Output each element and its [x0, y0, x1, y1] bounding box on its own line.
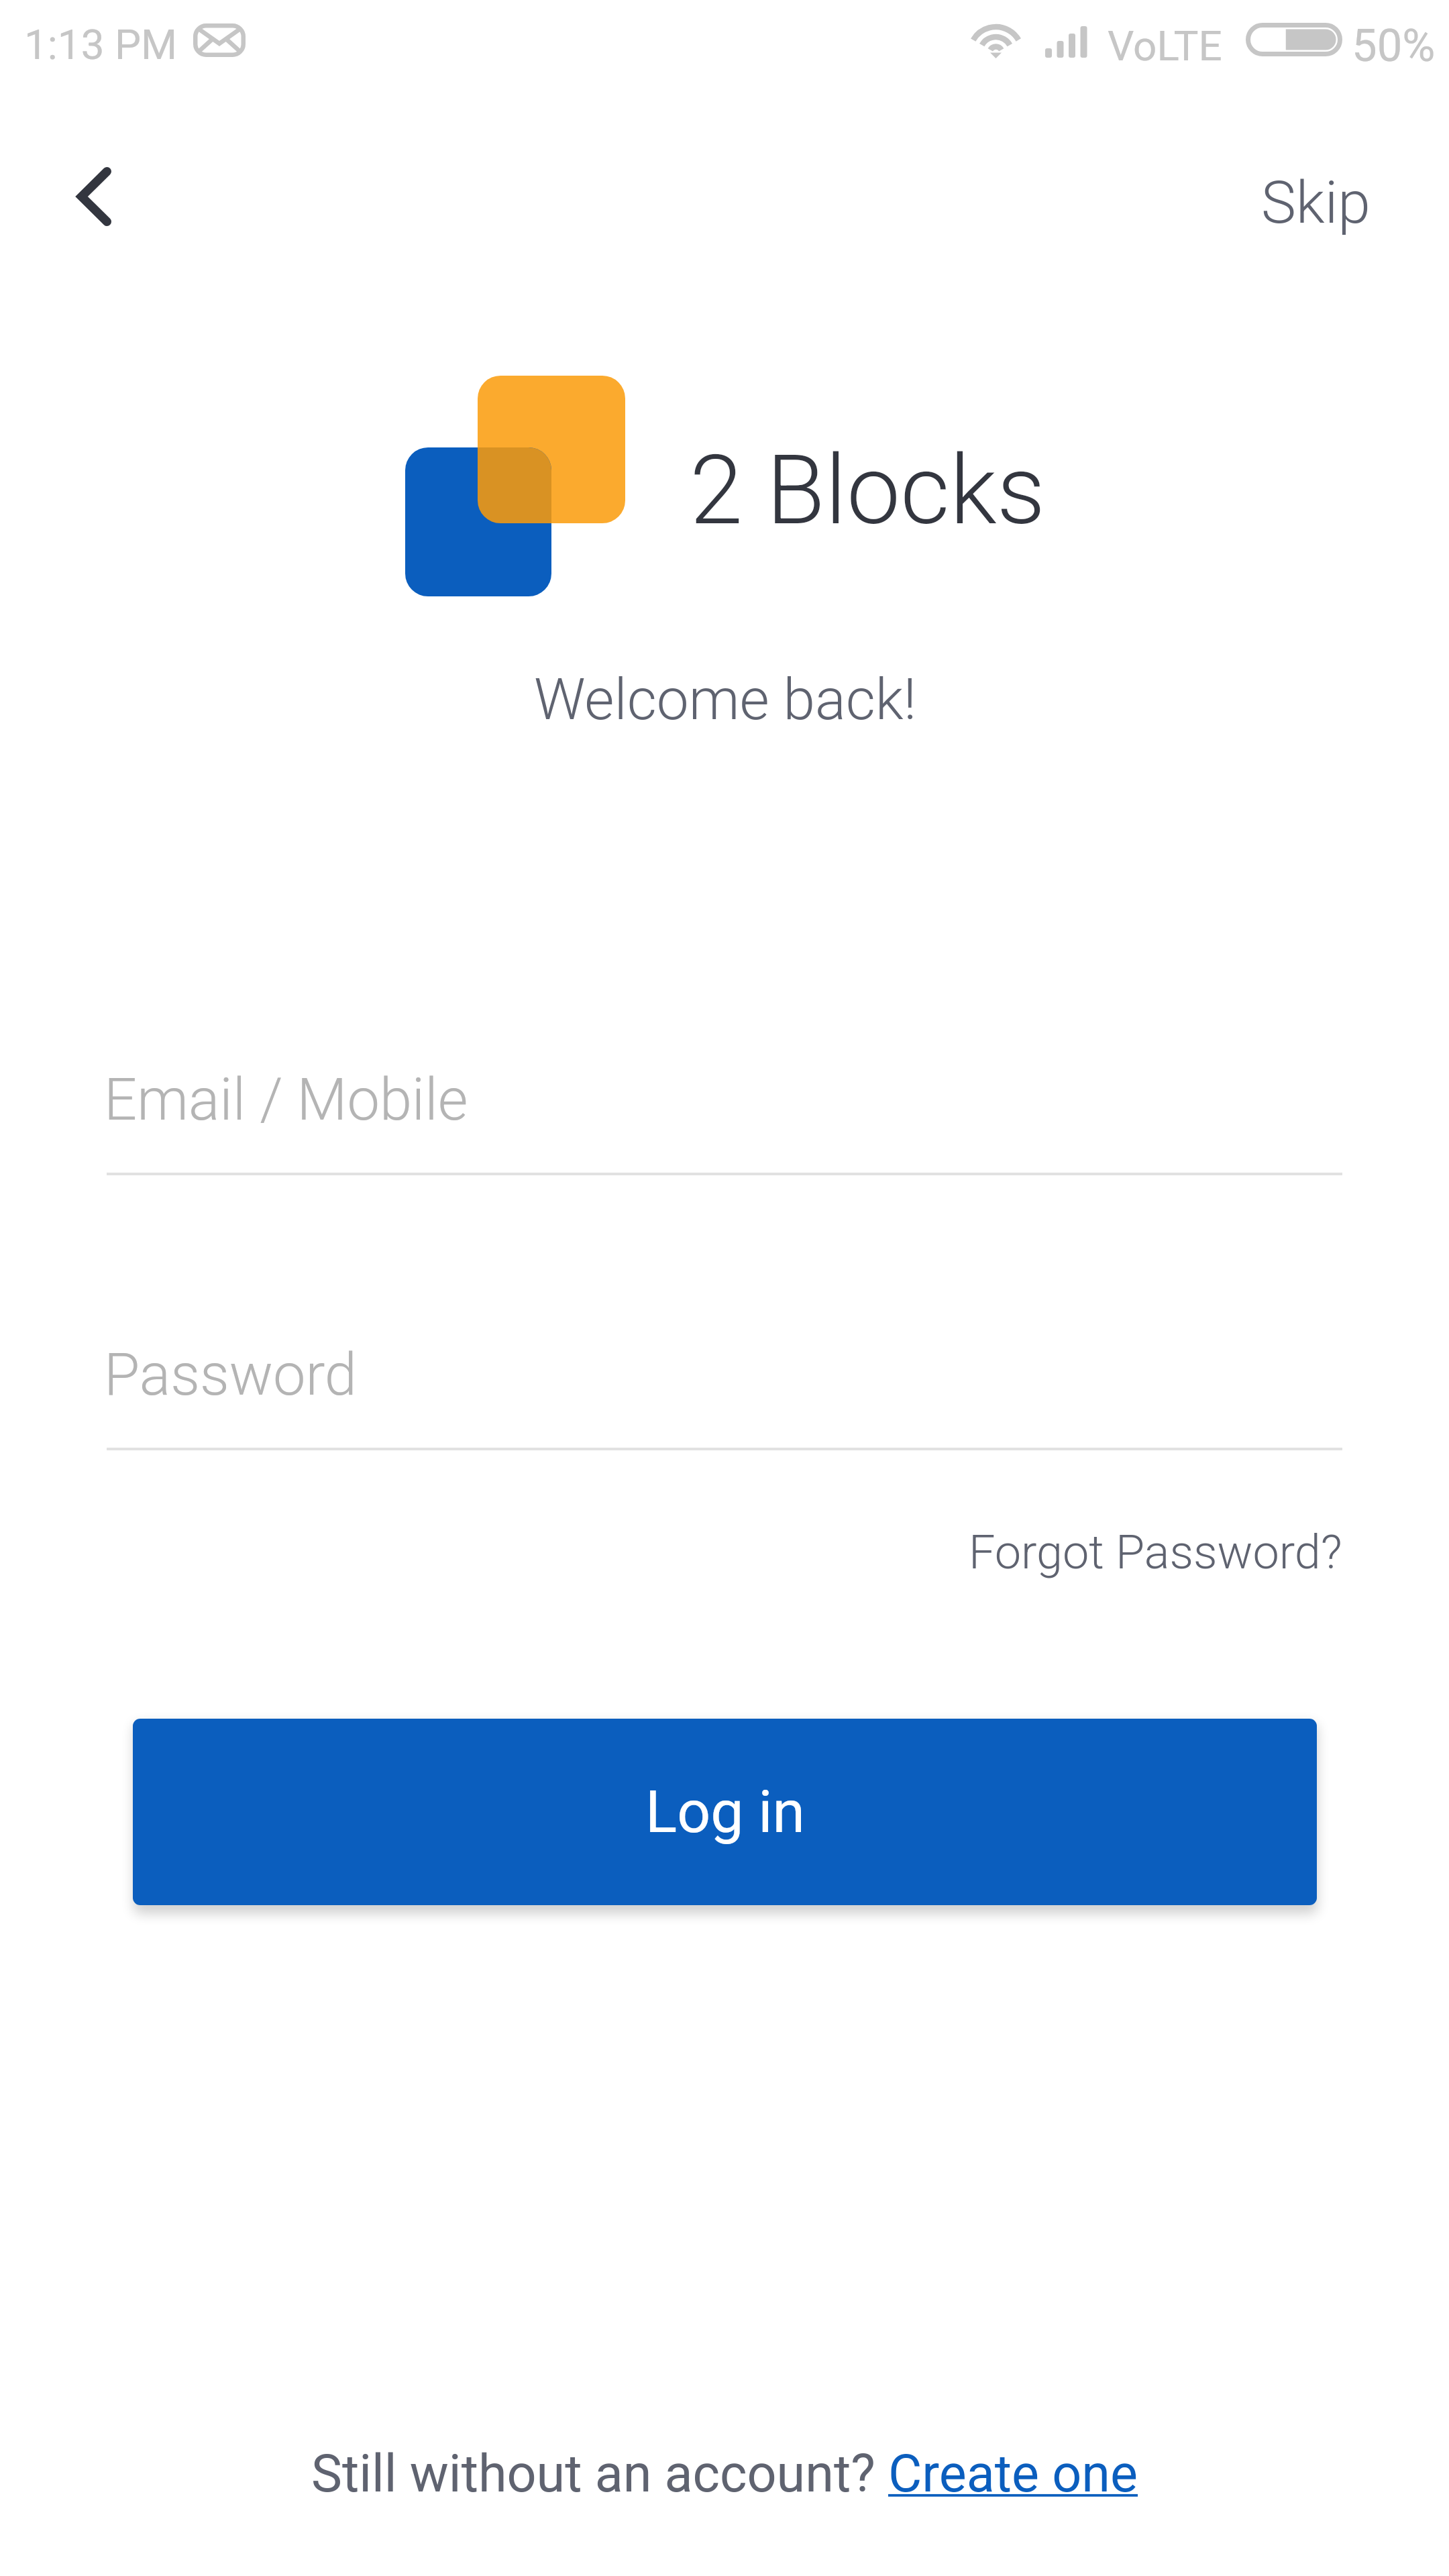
button[interactable]: Skip	[1261, 168, 1371, 237]
staticText: Still without an account?	[311, 2443, 888, 2504]
staticText: 50%	[1352, 19, 1436, 72]
staticText: Log in	[645, 1778, 805, 1847]
staticText: Forgot Password?	[969, 1525, 1342, 1580]
staticText: Create one	[888, 2443, 1138, 2504]
staticText: Email / Mobile	[104, 1066, 468, 1134]
staticText: 2 Blocks	[690, 434, 1046, 547]
button[interactable]: Log in	[133, 1719, 1317, 1905]
button[interactable]: Forgot Password?	[969, 1525, 1342, 1580]
button[interactable]: Create one	[888, 2443, 1138, 2504]
staticText: Welcome back!	[534, 666, 916, 733]
staticText: Skip	[1261, 168, 1371, 237]
staticText: VoLTE	[1108, 21, 1222, 70]
button[interactable]: Back	[34, 136, 154, 257]
staticText: 1:13 PM	[24, 20, 178, 69]
staticText: Password	[104, 1341, 357, 1409]
